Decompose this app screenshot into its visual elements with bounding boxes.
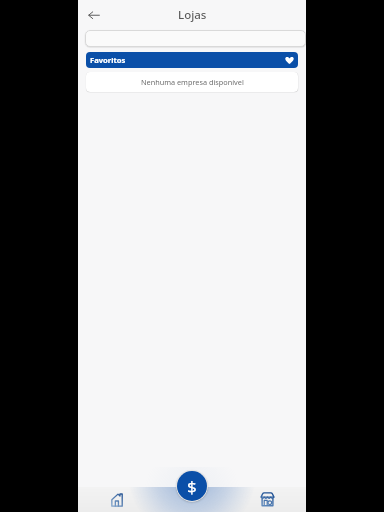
button[interactable]: Payments [177,471,207,501]
button[interactable]: Back [83,4,105,26]
staticText: Lojas [178,7,207,23]
staticText: Favoritos [90,55,126,65]
button[interactable]: Nenhuma empresa disponível [86,72,298,92]
staticText: Nenhuma empresa disponível [141,77,244,87]
button[interactable]: Favoritos [86,52,298,68]
button[interactable]: Home [78,487,154,512]
button[interactable] [85,30,306,47]
staticText: $ [187,475,197,498]
button[interactable]: Stores [230,487,306,512]
